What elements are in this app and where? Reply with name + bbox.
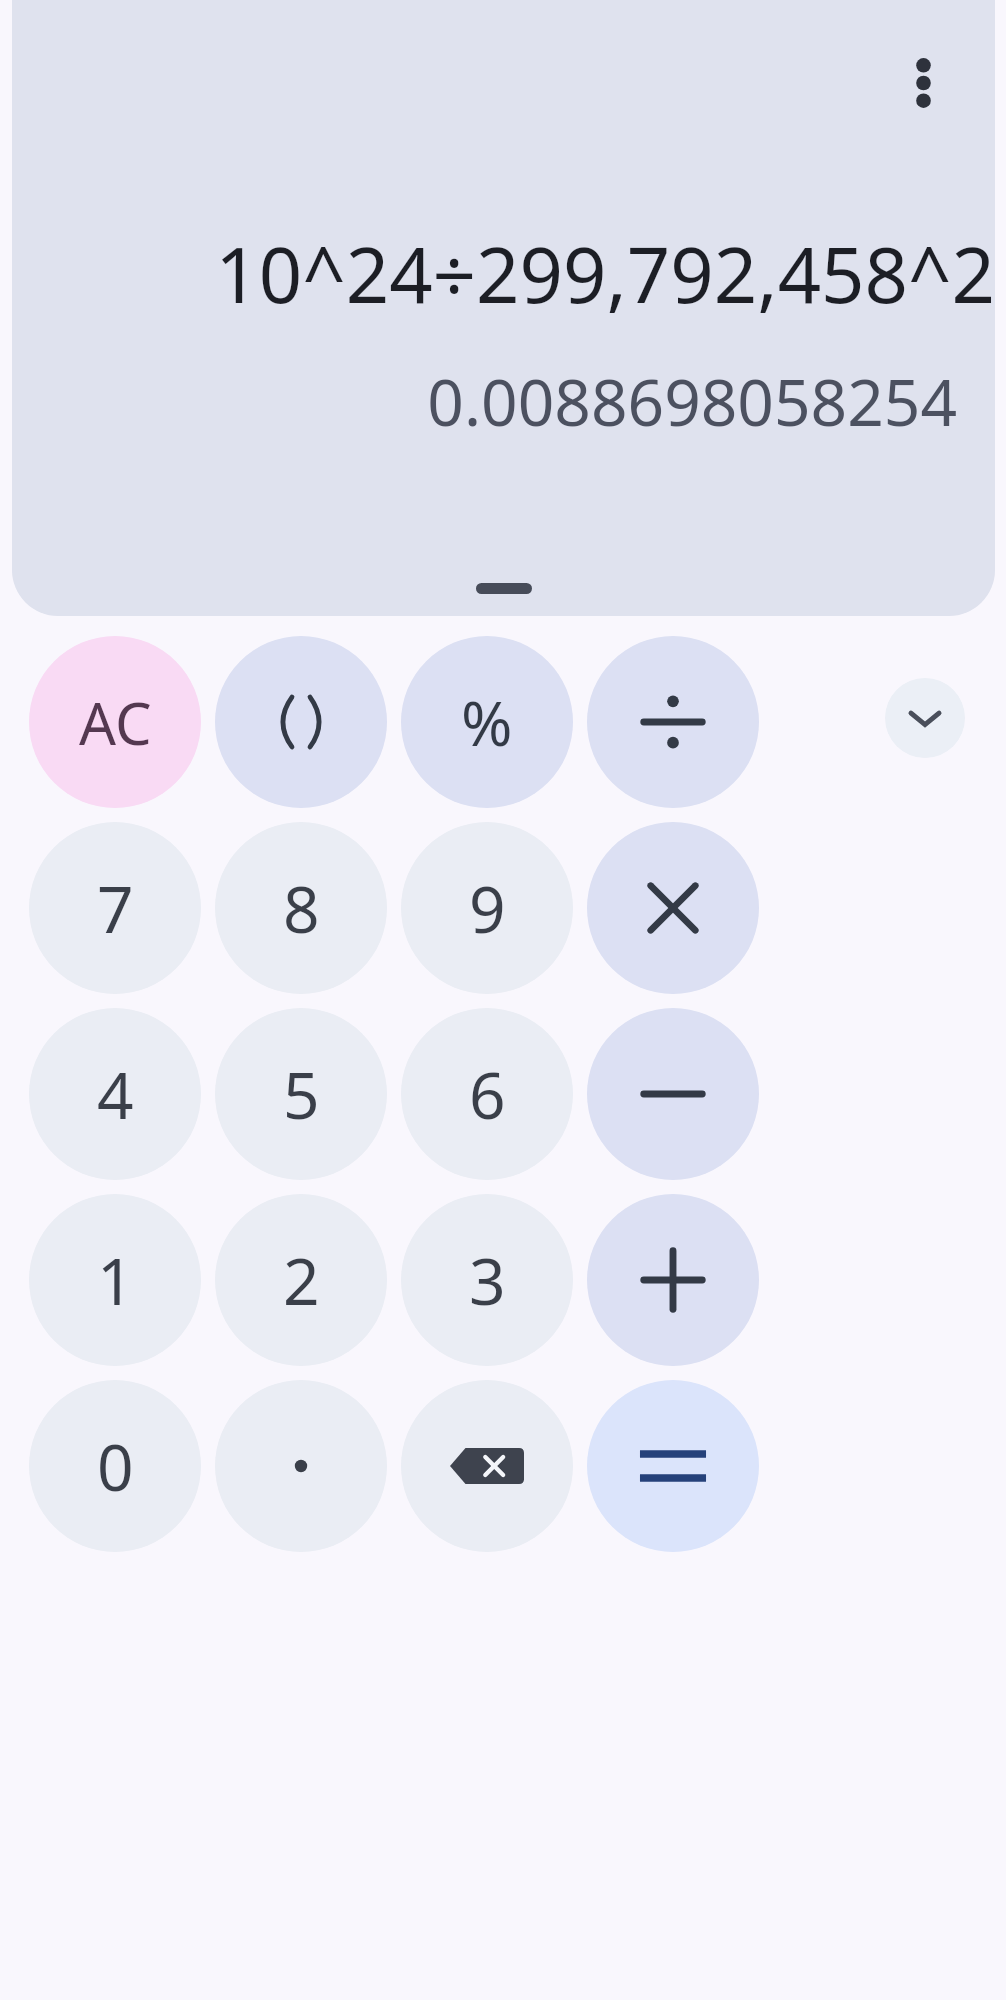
button[interactable]: 7 (29, 822, 201, 994)
button[interactable]: 4 (29, 1008, 201, 1180)
button[interactable]: √ (51, 662, 163, 774)
button[interactable]: π (217, 662, 329, 774)
button[interactable]: 1 (29, 1194, 201, 1366)
staticText: √ (87, 681, 128, 756)
button[interactable]: Plus (587, 1194, 759, 1366)
button[interactable]: 5 (215, 1008, 387, 1180)
button[interactable]: Minus (587, 1008, 759, 1180)
button[interactable]: ! (548, 662, 660, 774)
staticText: 10^24÷299,792,458^2 (215, 222, 995, 326)
button[interactable]: 6 (401, 1008, 573, 1180)
button[interactable]: AC (29, 636, 201, 808)
staticText: 0 (97, 1423, 134, 1510)
staticText: 7 (97, 865, 134, 952)
button[interactable]: % (401, 636, 573, 808)
button[interactable]: 9 (401, 822, 573, 994)
button[interactable]: 2 (215, 1194, 387, 1366)
button[interactable]: 3 (401, 1194, 573, 1366)
staticText: 9 (469, 865, 506, 952)
staticText: 4 (97, 1051, 134, 1138)
staticText: % (461, 680, 513, 764)
button[interactable]: 8 (215, 822, 387, 994)
staticText: 6 (469, 1051, 506, 1138)
button[interactable]: Multiply (587, 822, 759, 994)
button[interactable]: 0 (29, 1380, 201, 1552)
button[interactable]: More options (881, 41, 965, 125)
staticText: 5 (283, 1051, 320, 1138)
staticText: 1 (97, 1237, 134, 1324)
button[interactable]: Divide (587, 636, 759, 808)
button[interactable]: Show more functions (885, 678, 965, 758)
button[interactable]: ^ (384, 662, 496, 774)
staticText: AC (79, 683, 152, 762)
button[interactable]: Decimal point (215, 1380, 387, 1552)
staticText: 8 (283, 865, 320, 952)
button[interactable]: Backspace (401, 1380, 573, 1552)
button[interactable]: Parentheses (215, 636, 387, 808)
button[interactable]: Equals (587, 1380, 759, 1552)
staticText: 2 (283, 1237, 320, 1324)
staticText: 0.0088698058254 (427, 358, 957, 445)
staticText: 3 (469, 1237, 506, 1324)
staticText: π (254, 679, 292, 758)
